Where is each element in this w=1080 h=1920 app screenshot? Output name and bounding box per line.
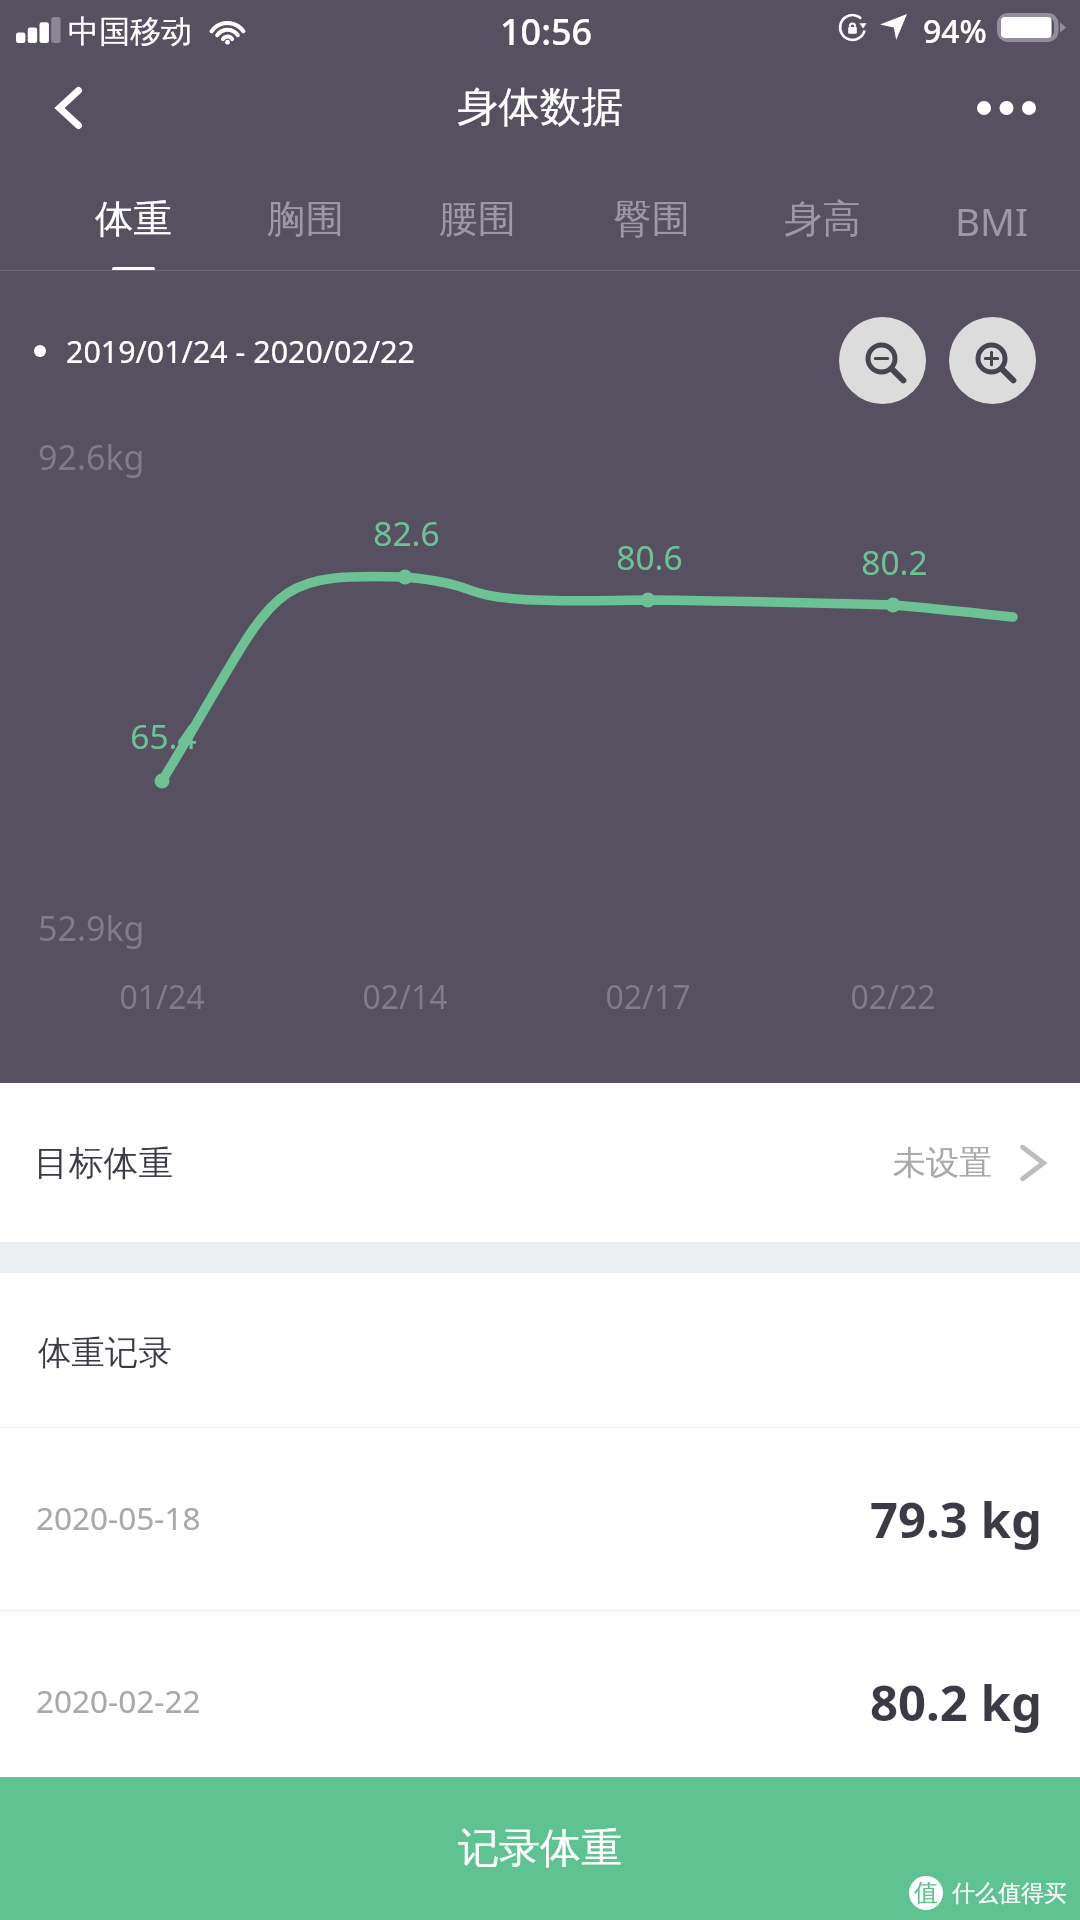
staticText: 目标体重	[34, 1141, 174, 1185]
button[interactable]: Back	[28, 67, 110, 149]
staticText: 什么值得买	[952, 1879, 1067, 1908]
button[interactable]: 2020-02-22	[0, 1611, 1080, 1793]
staticText: 胸围	[267, 195, 344, 244]
staticText: 未设置	[893, 1142, 992, 1184]
staticText: 65.4	[130, 713, 197, 759]
button[interactable]: 身高	[742, 170, 902, 271]
staticText: 体重	[95, 195, 172, 244]
staticText: 02/17	[605, 975, 691, 1019]
button[interactable]: 胸围	[225, 170, 385, 271]
staticText: 80.6	[616, 534, 683, 580]
staticText: 80.2 kg	[870, 1669, 1042, 1736]
staticText: 52.9kg	[38, 905, 145, 951]
staticText: 02/14	[362, 975, 448, 1019]
button[interactable]: Zoom out	[839, 317, 926, 404]
button[interactable]: 记录体重	[0, 1777, 1080, 1920]
staticText: 01/24	[119, 975, 205, 1019]
staticText: 身体数据	[457, 81, 623, 133]
staticText: BMI	[955, 195, 1028, 247]
staticText: 2019/01/24 - 2020/02/22	[66, 331, 415, 372]
staticText: 02/22	[850, 975, 936, 1019]
button[interactable]: 目标体重	[0, 1083, 1080, 1242]
staticText: 82.6	[373, 510, 440, 556]
button[interactable]: More options	[958, 73, 1054, 143]
staticText: 92.6kg	[38, 434, 145, 480]
button[interactable]: BMI	[911, 170, 1071, 271]
staticText: 臀围	[613, 195, 690, 244]
button[interactable]: 2020-05-18	[0, 1428, 1080, 1610]
staticText: 中国移动	[68, 12, 192, 51]
staticText: 10:56	[500, 7, 593, 56]
staticText: 值	[914, 1878, 938, 1908]
button[interactable]: Zoom in	[949, 317, 1036, 404]
button[interactable]: 臀围	[571, 170, 731, 271]
button[interactable]: 体重	[53, 170, 213, 271]
staticText: 体重记录	[38, 1332, 172, 1374]
staticText: 94%	[923, 9, 987, 53]
staticText: 79.3 kg	[870, 1486, 1042, 1553]
staticText: 记录体重	[458, 1823, 622, 1875]
staticText: 80.2	[861, 539, 928, 585]
staticText: 2020-02-22	[36, 1679, 201, 1722]
staticText: 身高	[784, 195, 861, 244]
staticText: 腰围	[439, 195, 516, 244]
staticText: 2020-05-18	[36, 1496, 201, 1539]
button[interactable]: 腰围	[397, 170, 557, 271]
